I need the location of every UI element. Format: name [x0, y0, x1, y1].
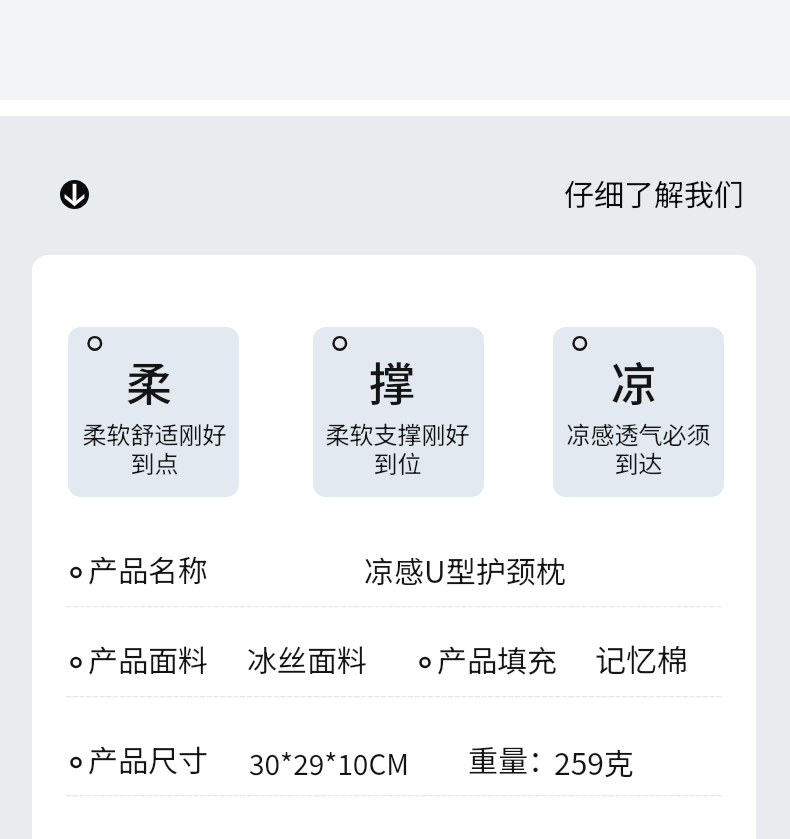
staticText: 30*29*10CM	[249, 743, 409, 784]
button[interactable]	[32, 607, 756, 696]
button[interactable]: Scroll down for product details	[60, 180, 89, 209]
button[interactable]	[32, 697, 756, 795]
staticText: 产品面料	[88, 637, 208, 680]
staticText: 仔细了解我们	[564, 171, 744, 214]
staticText: 柔软支撑刚好 到位	[313, 416, 483, 480]
staticText: 产品填充	[437, 637, 557, 680]
button[interactable]: 凉	[553, 327, 724, 497]
staticText: 凉感透气必须 到达	[553, 416, 724, 480]
staticText: 259克	[554, 740, 634, 783]
staticText: 撑	[369, 348, 415, 415]
button[interactable]: 撑	[313, 327, 484, 497]
staticText: 产品名称	[88, 547, 208, 590]
button[interactable]	[32, 496, 756, 606]
staticText: 冰丝面料	[247, 637, 367, 680]
staticText: 产品尺寸	[88, 737, 208, 780]
staticText: 记忆棉	[595, 636, 688, 681]
button[interactable]: 柔	[68, 327, 239, 497]
staticText: 凉感U型护颈枕	[364, 548, 566, 591]
staticText: 柔软舒适刚好 到点	[69, 416, 239, 480]
staticText: 柔	[126, 348, 172, 415]
staticText: 重量：	[468, 737, 558, 780]
staticText: 凉	[611, 348, 657, 415]
